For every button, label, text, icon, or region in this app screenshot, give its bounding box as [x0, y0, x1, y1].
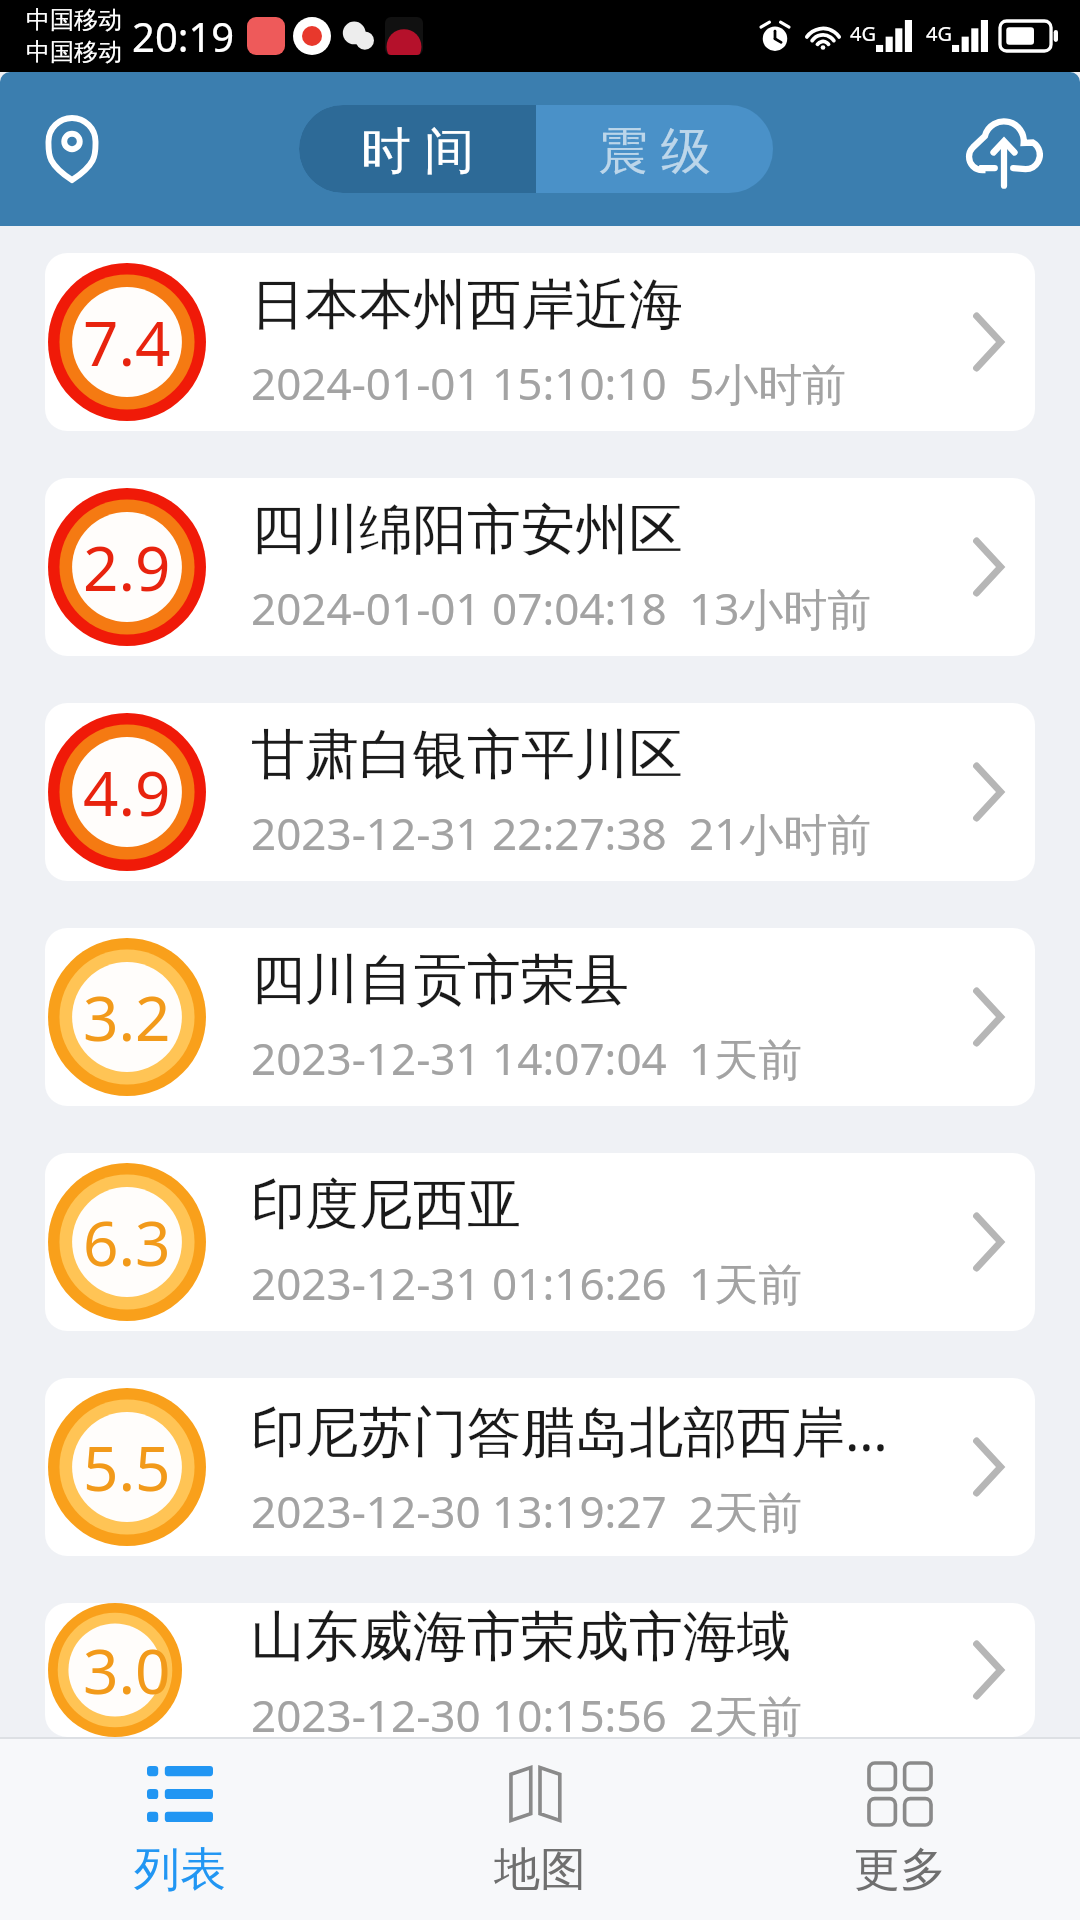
staticText: 2023-12-31 01:16:26	[251, 1253, 667, 1313]
staticText: 2023-12-31 22:27:38	[251, 803, 667, 863]
staticText: 2天前	[689, 1685, 803, 1737]
staticText: 3.2	[83, 975, 171, 1059]
button[interactable]: 5.5	[45, 1378, 1035, 1556]
button[interactable]: 6.3	[45, 1153, 1035, 1331]
staticText: 5小时前	[689, 353, 847, 413]
staticText: 山东威海市荣成市海域	[251, 1603, 791, 1671]
staticText: 四川绵阳市安州区	[251, 496, 683, 564]
staticText: 地图	[494, 1841, 586, 1899]
staticText: 2024-01-01 07:04:18	[251, 578, 667, 638]
button[interactable]: 2.9	[45, 478, 1035, 656]
staticText: 震 级	[598, 115, 711, 183]
staticText: 4G	[850, 20, 876, 47]
staticText: 3.0	[83, 1628, 171, 1712]
staticText: 7.4	[83, 300, 171, 384]
staticText: 2023-12-31 14:07:04	[251, 1028, 667, 1088]
staticText: 2.9	[83, 525, 171, 609]
button[interactable]: Location	[26, 103, 118, 195]
staticText: 列表	[134, 1841, 226, 1899]
staticText: 21小时前	[689, 803, 872, 863]
button[interactable]: 3.0	[45, 1603, 1035, 1737]
button[interactable]: Upload	[952, 97, 1056, 201]
staticText: 中国移动	[26, 37, 122, 67]
button[interactable]: 时 间	[299, 105, 536, 193]
button[interactable]: 4.9	[45, 703, 1035, 881]
button[interactable]: 列表	[0, 1739, 360, 1920]
staticText: 6.3	[83, 1200, 171, 1284]
button[interactable]: 3.2	[45, 928, 1035, 1106]
staticText: 2024-01-01 15:10:10	[251, 353, 667, 413]
staticText: 2天前	[689, 1481, 803, 1541]
staticText: 4.9	[83, 750, 171, 834]
staticText: 2023-12-30 10:15:56	[251, 1685, 667, 1737]
staticText: 四川自贡市荣县	[251, 946, 629, 1014]
staticText: 甘肃白银市平川区	[251, 721, 683, 789]
staticText: 印度尼西亚	[251, 1171, 521, 1239]
staticText: 日本本州西岸近海	[251, 271, 683, 339]
staticText: 4G	[926, 20, 952, 47]
staticText: 更多	[854, 1841, 946, 1899]
staticText: 1天前	[689, 1253, 803, 1313]
staticText: 1天前	[689, 1028, 803, 1088]
staticText: 印尼苏门答腊岛北部西岸…	[251, 1393, 888, 1467]
staticText: 中国移动	[26, 5, 122, 35]
button[interactable]: 地图	[360, 1739, 720, 1920]
button[interactable]: 更多	[720, 1739, 1080, 1920]
button[interactable]: 震 级	[536, 105, 773, 193]
staticText: 13小时前	[689, 578, 872, 638]
staticText: 20:19	[132, 9, 235, 63]
staticText: 2023-12-30 13:19:27	[251, 1481, 667, 1541]
staticText: 时 间	[361, 115, 474, 183]
staticText: 5.5	[83, 1425, 171, 1509]
button[interactable]: 7.4	[45, 253, 1035, 431]
